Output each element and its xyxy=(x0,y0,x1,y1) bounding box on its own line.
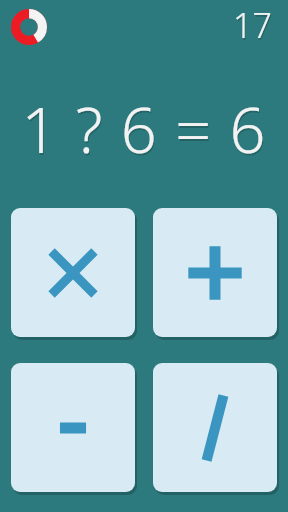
button[interactable]: Multiply xyxy=(11,208,135,337)
button[interactable]: Divide xyxy=(153,363,277,492)
staticText: 17 xyxy=(233,2,272,48)
staticText: 1 ? 6 = 6 xyxy=(21,86,267,172)
button[interactable]: Minus xyxy=(11,363,135,492)
button[interactable]: 17 xyxy=(233,2,272,48)
staticText: 17 xyxy=(234,4,273,50)
button[interactable]: Timer xyxy=(11,9,47,45)
staticText: 1 ? 6 = 6 xyxy=(22,88,268,174)
button[interactable]: Plus xyxy=(153,208,277,337)
